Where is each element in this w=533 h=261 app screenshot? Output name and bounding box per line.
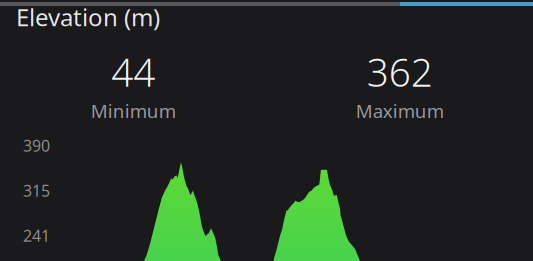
staticText: 362	[367, 46, 433, 97]
staticText: 315	[23, 180, 50, 201]
staticText: Elevation (m)	[16, 1, 160, 33]
staticText: 390	[23, 135, 50, 156]
staticText: 44	[111, 46, 155, 97]
staticText: 241	[23, 225, 50, 246]
button[interactable]: 44	[0, 46, 266, 123]
staticText: Maximum	[356, 98, 444, 123]
staticText: Minimum	[91, 98, 176, 123]
button[interactable]: 362	[266, 46, 533, 123]
